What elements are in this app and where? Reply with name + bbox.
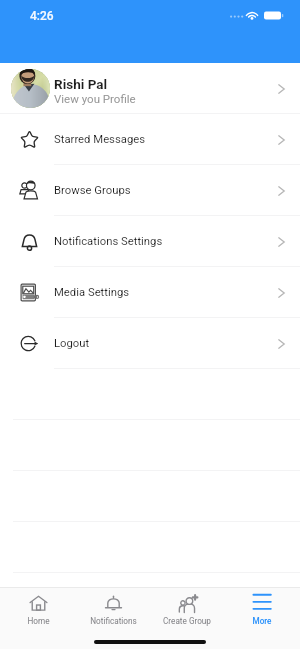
staticText: Starred Messages [54,133,146,146]
staticText: Rishi Pal [54,76,108,92]
staticText: Media Settings [54,286,130,299]
staticText: Notifications Settings [54,235,163,248]
staticText: Notifications [90,616,137,626]
button[interactable]: Rishi Pal [0,63,300,114]
staticText: 4:26 [30,9,54,23]
staticText: Browse Groups [54,184,131,197]
staticText: More [252,616,272,626]
staticText: View you Profile [54,92,136,105]
staticText: Home [27,616,50,626]
staticText: Create Group [163,616,211,626]
button[interactable]: Notifications [77,588,149,635]
button[interactable]: Media Settings [0,267,300,318]
button[interactable]: Create Group [151,588,223,635]
button[interactable]: Browse Groups [0,165,300,216]
button[interactable]: Home [2,588,74,635]
button[interactable]: Notifications Settings [0,216,300,267]
button[interactable]: Logout [0,318,300,369]
button[interactable]: More [226,588,298,635]
staticText: Logout [54,337,90,350]
button[interactable]: Starred Messages [0,114,300,165]
